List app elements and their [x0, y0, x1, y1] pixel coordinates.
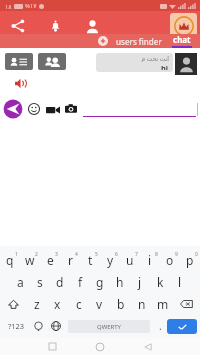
button[interactable]: l [170, 271, 190, 293]
staticText: %١٧ [25, 2, 37, 10]
button[interactable]: Contact card [5, 53, 33, 70]
button[interactable]: chat [168, 34, 196, 48]
button[interactable]: Backspace [173, 293, 200, 315]
staticText: 1 [15, 251, 18, 258]
button[interactable]: App logo [170, 13, 197, 40]
button[interactable]: v [89, 293, 110, 315]
staticText: l [178, 274, 182, 290]
button[interactable]: f [70, 271, 90, 293]
button[interactable]: Share [8, 16, 28, 36]
button[interactable]: b [110, 293, 131, 315]
staticText: j [138, 274, 142, 290]
staticText: a [17, 274, 24, 290]
button[interactable]: Add [97, 35, 109, 47]
button[interactable]: e [40, 249, 60, 271]
staticText: x [54, 296, 61, 312]
staticText: w [25, 252, 35, 268]
button[interactable]: Enter [167, 319, 197, 334]
button[interactable]: k [150, 271, 170, 293]
staticText: i [148, 252, 152, 268]
staticText: 0 [195, 251, 198, 258]
staticText: chat [173, 34, 191, 45]
button[interactable]: r [60, 249, 80, 271]
staticText: g [96, 274, 104, 290]
staticText: z [34, 296, 40, 312]
button[interactable]: Camera [64, 102, 78, 116]
button[interactable]: a [10, 271, 30, 293]
button[interactable] [83, 101, 200, 117]
staticText: r [68, 252, 73, 268]
button[interactable]: m [152, 293, 173, 315]
button[interactable]: y [100, 249, 120, 271]
staticText: b [117, 296, 125, 312]
button[interactable]: Home [76, 338, 124, 355]
staticText: d [56, 274, 64, 290]
button[interactable]: QWERTY [68, 320, 150, 333]
button[interactable]: Notifications [45, 16, 65, 36]
staticText: ١٨ [5, 3, 12, 10]
button[interactable]: g [90, 271, 110, 293]
button[interactable]: s [30, 271, 50, 293]
staticText: e [47, 252, 54, 268]
button[interactable]: w [20, 249, 40, 271]
button[interactable]: o [160, 249, 180, 271]
button[interactable]: Shift [0, 293, 26, 315]
staticText: v [96, 296, 103, 312]
staticText: انت نحت م [141, 55, 169, 63]
staticText: s [37, 274, 43, 290]
button[interactable]: . [153, 316, 167, 336]
staticText: users finder [116, 36, 162, 47]
button[interactable]: p [180, 249, 200, 271]
button[interactable]: Profile [82, 16, 102, 36]
staticText: 5 [95, 251, 98, 258]
button[interactable]: Group [38, 53, 66, 70]
button[interactable]: Recents [28, 338, 76, 355]
button[interactable]: q [0, 249, 20, 271]
staticText: p [186, 252, 194, 268]
button[interactable]: z [26, 293, 47, 315]
staticText: q [6, 252, 14, 268]
button[interactable]: t [80, 249, 100, 271]
staticText: u [126, 252, 134, 268]
staticText: k [157, 274, 164, 290]
button[interactable]: Video [45, 102, 60, 117]
staticText: 2 [35, 251, 38, 258]
button[interactable]: x [47, 293, 68, 315]
staticText: 6 [115, 251, 118, 258]
staticText: 4 [75, 251, 78, 258]
staticText: 7 [135, 251, 138, 258]
staticText: n [138, 296, 146, 312]
button[interactable]: users finder [113, 36, 165, 47]
button[interactable]: Language [47, 316, 65, 336]
button[interactable]: Send [2, 98, 24, 120]
staticText: f [78, 274, 83, 290]
button[interactable]: انت نحت م [96, 53, 173, 72]
staticText: ?123 [8, 321, 25, 331]
button[interactable]: h [110, 271, 130, 293]
staticText: 3 [55, 251, 58, 258]
button[interactable]: Avatar [175, 53, 197, 75]
button[interactable]: Emoji [27, 102, 41, 116]
button[interactable]: j [130, 271, 150, 293]
button[interactable]: Sound [12, 75, 28, 91]
button[interactable]: Back [124, 338, 172, 355]
button[interactable]: ?123 [3, 316, 29, 336]
staticText: . [159, 319, 162, 333]
staticText: y [107, 252, 114, 268]
staticText: 8 [155, 251, 158, 258]
staticText: h [116, 274, 124, 290]
staticText: QWERTY [97, 323, 122, 331]
button[interactable]: c [68, 293, 89, 315]
staticText: c [76, 296, 82, 312]
button[interactable]: i [140, 249, 160, 271]
staticText: hi [161, 63, 169, 70]
staticText: t [88, 252, 93, 268]
button[interactable]: n [131, 293, 152, 315]
button[interactable]: d [50, 271, 70, 293]
staticText: o [166, 252, 174, 268]
staticText: 9 [175, 251, 178, 258]
button[interactable]: Emoji [29, 316, 47, 336]
staticText: m [157, 296, 169, 312]
button[interactable]: u [120, 249, 140, 271]
